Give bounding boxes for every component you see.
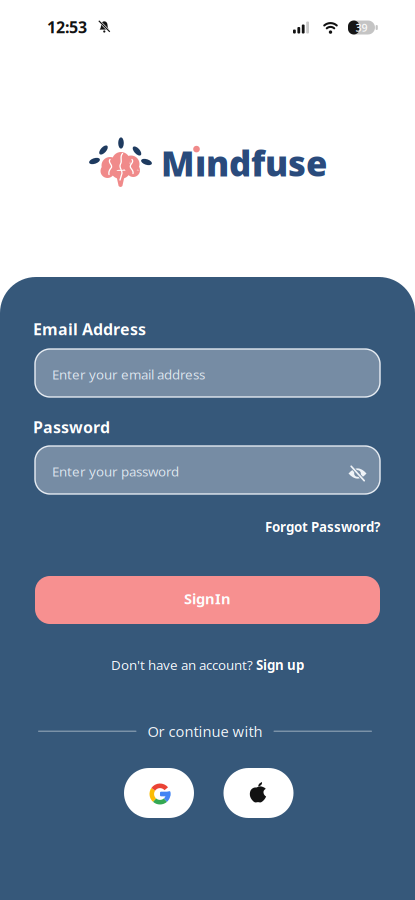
staticText: Sign up — [256, 656, 304, 674]
staticText: Enter your password — [52, 462, 179, 480]
button[interactable]: Password — [35, 446, 380, 494]
button[interactable]: SignIn — [35, 576, 380, 624]
staticText: 12:53 — [47, 16, 87, 38]
staticText: Email Address — [33, 318, 146, 340]
button[interactable]: Forgot Password? — [265, 518, 380, 536]
button[interactable]: Email Address — [35, 349, 380, 397]
staticText: SignIn — [184, 589, 231, 608]
staticText: Password — [33, 416, 110, 438]
staticText: Mındfuse — [161, 140, 327, 186]
button[interactable]: Sign up — [256, 656, 304, 674]
staticText: Enter your email address — [52, 365, 205, 383]
staticText: Don't have an account? — [111, 656, 256, 674]
button[interactable]: Continue with Google — [124, 768, 194, 818]
button[interactable]: Show password — [348, 465, 367, 481]
staticText: 39 — [355, 20, 367, 35]
button[interactable]: Continue with Apple — [223, 768, 293, 818]
staticText: Or continue with — [147, 721, 262, 741]
staticText: Forgot Password? — [265, 518, 380, 536]
